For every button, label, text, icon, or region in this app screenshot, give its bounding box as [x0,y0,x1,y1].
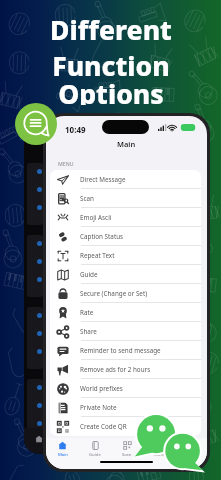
button[interactable]: Emoji Ascii [50,208,201,227]
staticText: Scan [122,452,132,457]
button[interactable]: Scan [111,438,143,457]
staticText: Share [80,327,97,336]
button[interactable]: Remove ads for 2 hours [50,360,201,379]
button[interactable]: Guide [79,438,111,457]
button[interactable]: Rate [50,303,201,322]
staticText: Function [52,48,170,76]
staticText: Rate [80,308,94,317]
button[interactable]: Scan [50,189,201,208]
staticText: Secure (Change or Set) [80,289,148,298]
staticText: Options [58,76,164,105]
button[interactable]: Reminder to send message [50,341,201,360]
staticText: World prefixes [80,384,123,393]
staticText: Guide [80,270,98,279]
button[interactable]: Direct Message [50,170,201,189]
staticText: Main [117,139,136,149]
staticText: Caption Status [80,232,124,241]
button[interactable]: Main [46,438,79,457]
staticText: Guide [89,452,101,457]
staticText: Different [50,12,172,48]
button[interactable]: Secure (Change or Set) [50,284,201,303]
staticText: Main [58,452,68,457]
button[interactable]: Guide [50,265,201,284]
staticText: Scan [80,194,94,203]
button[interactable]: Repeat Text [50,246,201,265]
button[interactable]: Chat app icon [15,103,57,145]
staticText: Direct Message [80,175,126,184]
staticText: More [154,452,165,457]
button[interactable]: World prefixes [50,379,201,398]
staticText: 10:49 [65,124,86,135]
staticText: Create Code QR [80,422,127,431]
staticText: Emoji Ascii [80,213,112,222]
button[interactable]: Create Code QR [50,417,201,436]
staticText: Reminder to send message [80,346,161,355]
staticText: Remove ads for 2 hours [80,365,151,374]
staticText: Repeat Text [80,251,115,260]
button[interactable]: More [143,438,175,457]
button[interactable]: Share [50,322,201,341]
button[interactable]: Private Note [50,398,201,417]
staticText: Private Note [80,403,117,412]
staticText: MENU [58,160,74,167]
button[interactable]: Caption Status [50,227,201,246]
button[interactable]: Set [175,438,207,457]
